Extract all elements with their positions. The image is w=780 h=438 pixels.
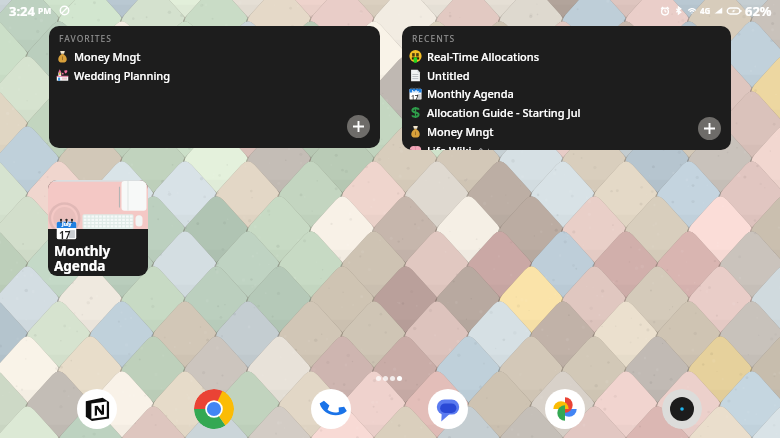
staticText: PM	[38, 5, 52, 17]
button[interactable]: Messages	[428, 389, 468, 429]
button[interactable]: Phone	[311, 389, 351, 429]
button[interactable]: Notion	[77, 389, 117, 429]
staticText: Monthly Agenda	[54, 242, 111, 275]
button[interactable]: Add	[698, 117, 721, 140]
button[interactable]: Photos	[545, 389, 585, 429]
staticText: Life Wiki	[427, 143, 472, 150]
staticText: July	[412, 89, 419, 94]
button[interactable]: Money Mngt	[56, 47, 380, 66]
button[interactable]: Wedding Planning	[56, 66, 380, 85]
staticText: 17	[59, 228, 71, 242]
button[interactable]: Add	[347, 115, 370, 138]
button[interactable]: Chrome	[194, 389, 234, 429]
button[interactable]: FAVORITES	[49, 26, 380, 148]
staticText: 62%	[745, 2, 772, 20]
button[interactable]: July	[409, 84, 731, 103]
button[interactable]: Real-Time Allocations	[409, 47, 731, 66]
button[interactable]: Life Wiki	[409, 141, 731, 150]
staticText: Real-Time Allocations	[427, 49, 540, 64]
button[interactable]: July	[48, 180, 148, 276]
staticText: Allocation Guide - Starting Jul	[427, 105, 581, 120]
button[interactable]: Money Mngt	[409, 122, 731, 141]
staticText: Untitled	[427, 68, 470, 83]
button[interactable]: Camera	[662, 389, 702, 429]
button[interactable]: Untitled	[409, 66, 731, 85]
staticText: Money Mngt	[74, 49, 141, 64]
staticText: Monthly Agenda	[427, 86, 514, 101]
staticText: Money Mngt	[427, 124, 494, 139]
button[interactable]: Allocation Guide - Starting Jul	[409, 103, 731, 122]
staticText: FAVORITES	[59, 33, 112, 45]
button[interactable]: RECENTS	[402, 26, 731, 150]
staticText: RECENTS	[412, 33, 456, 45]
staticText: Wedding Planning	[74, 68, 171, 83]
staticText: 3:24	[9, 2, 35, 20]
staticText: ⌃★ ▪ ▴ ▫	[477, 145, 517, 150]
staticText: July	[62, 221, 72, 228]
staticText: 4G	[700, 5, 711, 16]
staticText: 17	[411, 93, 419, 102]
